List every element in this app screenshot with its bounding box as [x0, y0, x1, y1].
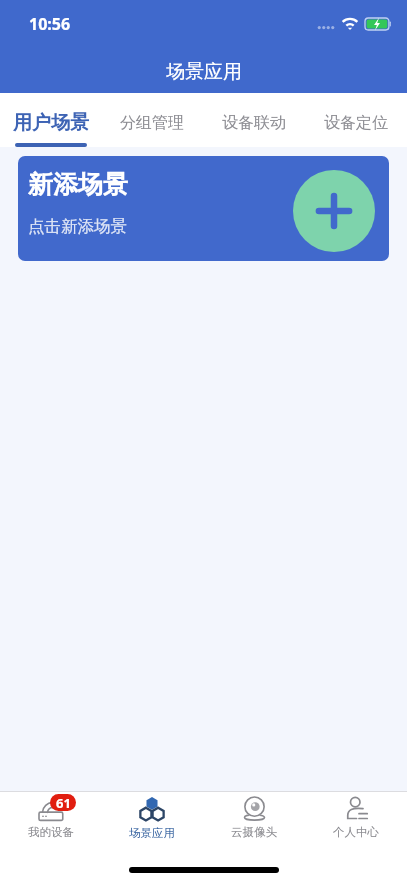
button[interactable]: 用户场景	[0, 93, 101, 147]
staticText: 设备定位	[324, 113, 388, 133]
staticText: 我的设备	[28, 825, 74, 839]
button[interactable]: 分组管理	[101, 93, 203, 133]
button[interactable]: 场景应用	[101, 796, 203, 840]
staticText: 61	[56, 794, 71, 811]
button[interactable]: 新添场景	[18, 156, 389, 261]
staticText: 新添场景	[28, 169, 128, 200]
button[interactable]: 设备定位	[305, 93, 407, 133]
button[interactable]: 个人中心	[305, 796, 407, 839]
staticText: 场景应用	[166, 60, 242, 84]
staticText: 场景应用	[129, 826, 175, 840]
staticText: 设备联动	[222, 113, 286, 133]
staticText: 分组管理	[120, 113, 184, 133]
button[interactable]: 61	[0, 796, 101, 839]
staticText: 10:56	[29, 13, 71, 35]
staticText: 个人中心	[333, 825, 379, 839]
staticText: 云摄像头	[231, 825, 277, 839]
button[interactable]: 设备联动	[203, 93, 305, 133]
button[interactable]: Add scene	[293, 170, 375, 252]
staticText: 用户场景	[13, 111, 89, 135]
staticText: 点击新添场景	[28, 216, 127, 237]
button[interactable]: 云摄像头	[203, 796, 305, 839]
